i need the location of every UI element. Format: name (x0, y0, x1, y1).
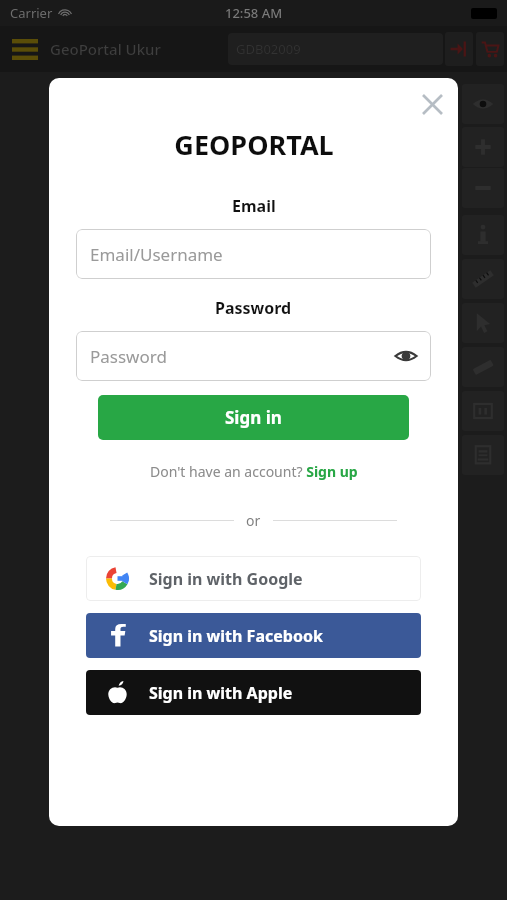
staticText: Don't have an account? Sign up (150, 462, 358, 481)
staticText: Sign in with Google (149, 568, 303, 590)
button[interactable]: Sign in with Facebook (86, 613, 421, 658)
button[interactable]: Sign in (98, 395, 409, 440)
button[interactable]: Measure (462, 259, 504, 299)
staticText: Password (215, 297, 292, 319)
button[interactable]: Close (413, 85, 451, 123)
staticText: Sign in (225, 406, 282, 429)
button[interactable]: Email/Username (76, 229, 431, 279)
staticText: or (246, 511, 261, 530)
staticText: GDB02009 (236, 40, 301, 58)
button[interactable]: Visibility (462, 84, 504, 124)
button[interactable]: Don't have an account? Sign up (150, 462, 358, 481)
staticText: Sign in with Facebook (149, 625, 323, 647)
staticText: Email (232, 195, 276, 217)
button[interactable]: Save (462, 435, 504, 475)
button[interactable]: Menu (6, 30, 44, 68)
button[interactable]: Cart (476, 32, 504, 66)
staticText: 12:58 AM (225, 4, 283, 22)
button[interactable]: Sign in with Apple (86, 670, 421, 715)
staticText: Email/Username (90, 243, 223, 266)
staticText: GeoPortal Ukur (50, 39, 161, 59)
staticText: Sign in with Apple (149, 682, 293, 704)
button[interactable]: Login (445, 32, 473, 66)
staticText: Password (90, 345, 167, 368)
staticText: Carrier (10, 4, 53, 22)
button[interactable]: Sign in with Google (86, 556, 421, 601)
button[interactable]: 3D view (462, 391, 504, 431)
button[interactable]: Password (76, 331, 431, 381)
button[interactable]: Show password (391, 341, 421, 371)
button[interactable]: Select (462, 303, 504, 343)
staticText: GEOPORTAL (174, 126, 334, 163)
button[interactable]: Erase (462, 347, 504, 387)
